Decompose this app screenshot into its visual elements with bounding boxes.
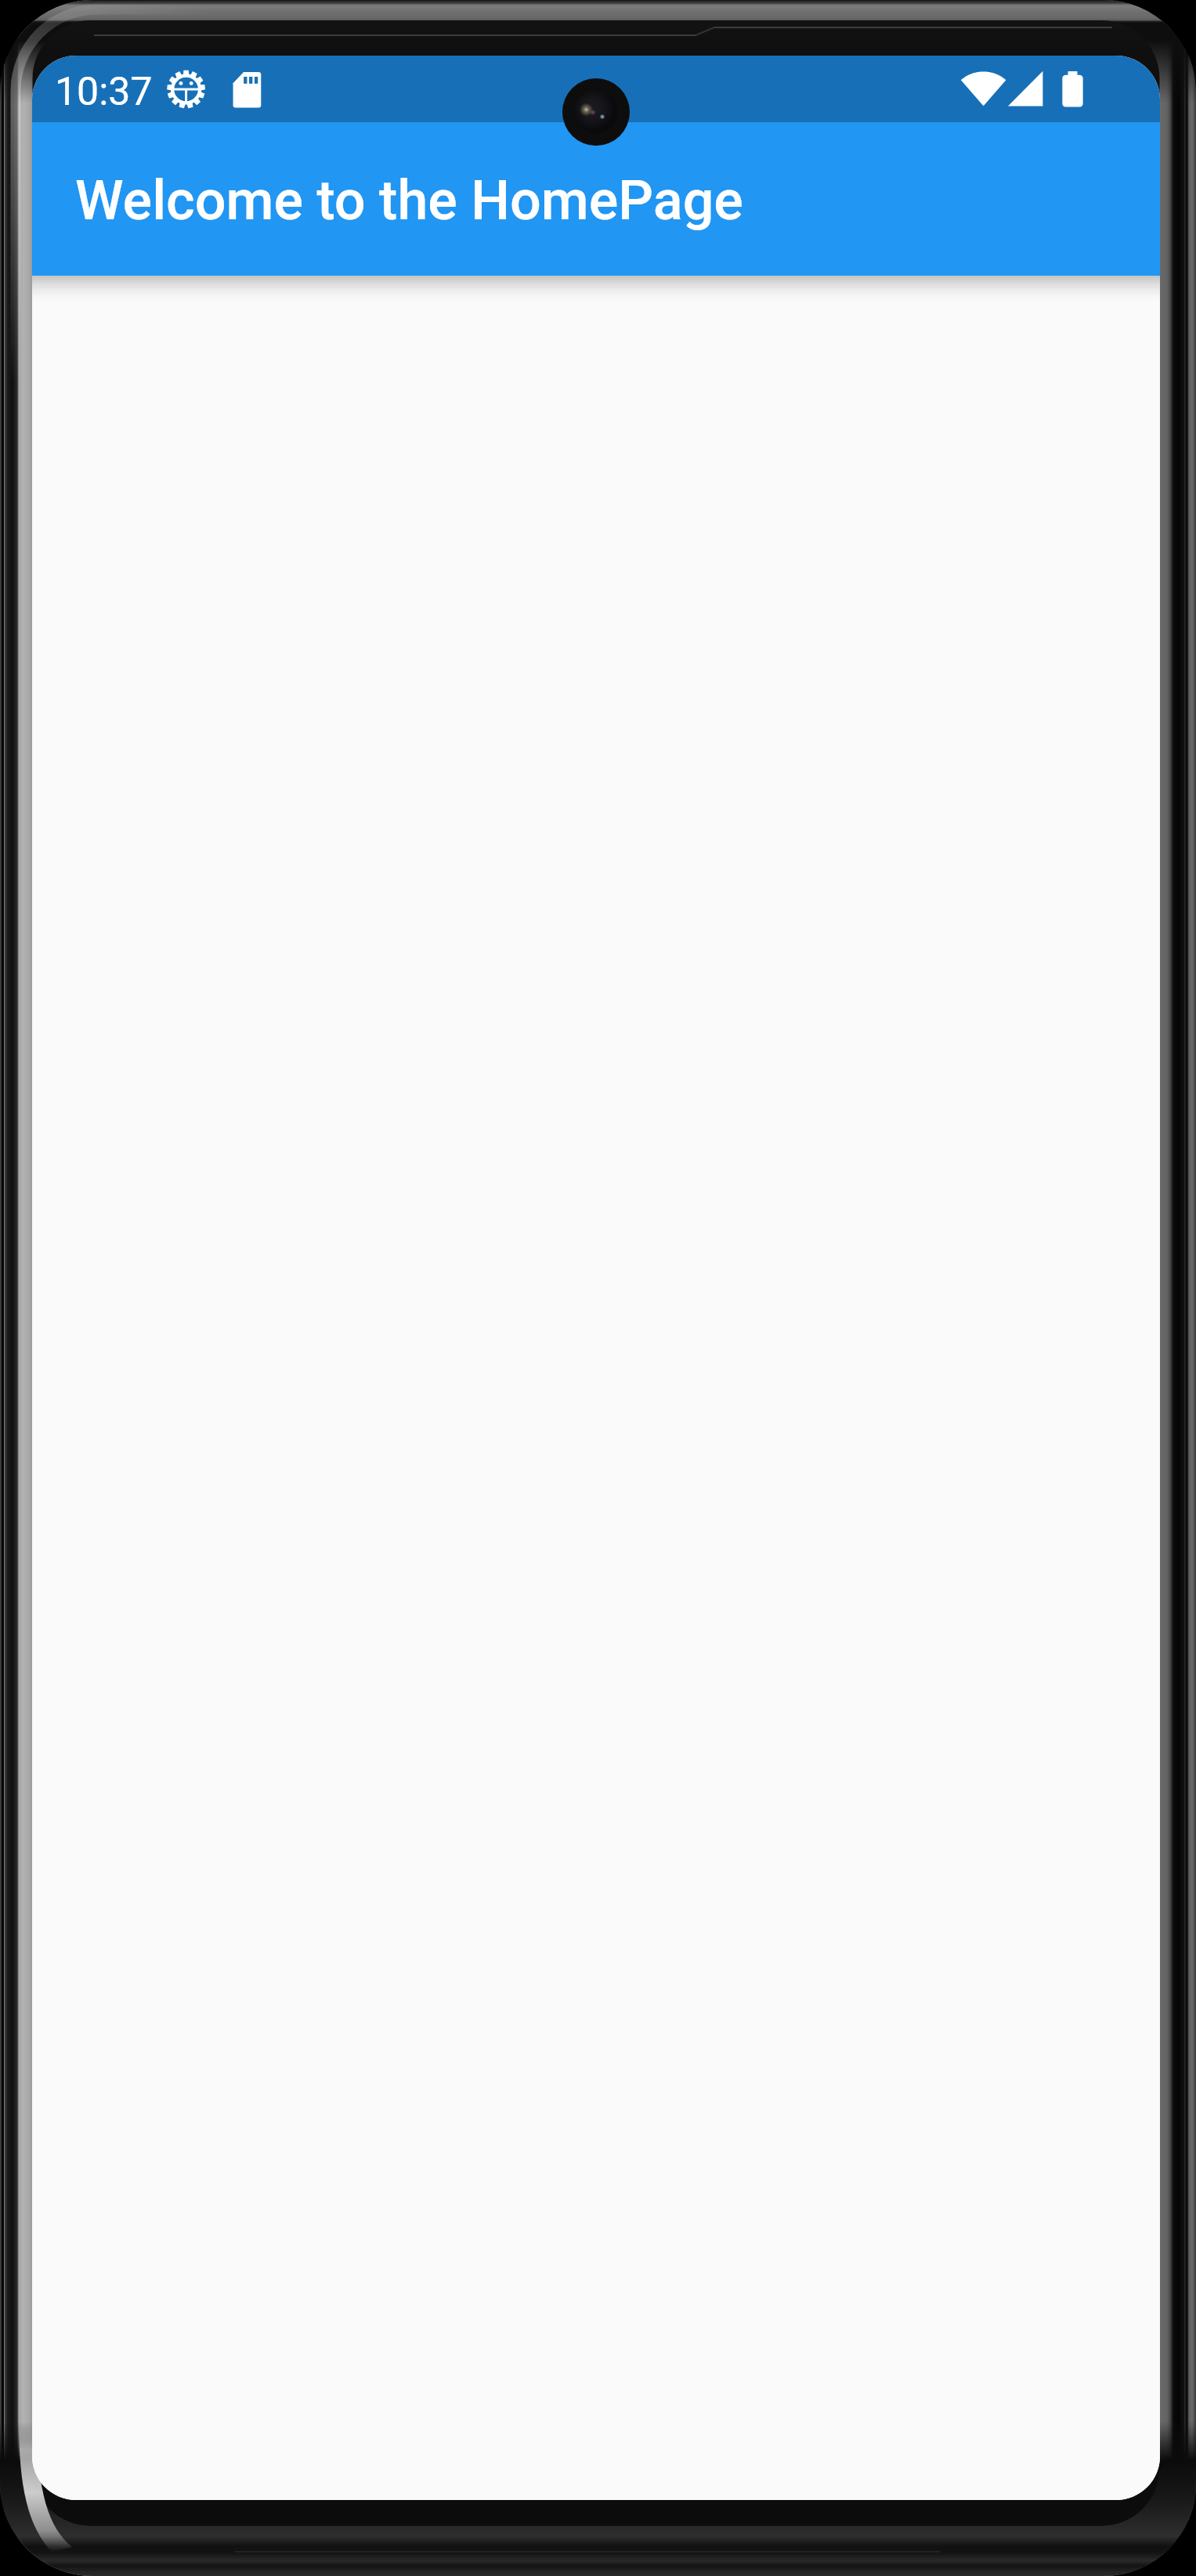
staticText: Welcome to the HomePage [75, 168, 743, 233]
staticText: 10:37 [55, 69, 153, 115]
